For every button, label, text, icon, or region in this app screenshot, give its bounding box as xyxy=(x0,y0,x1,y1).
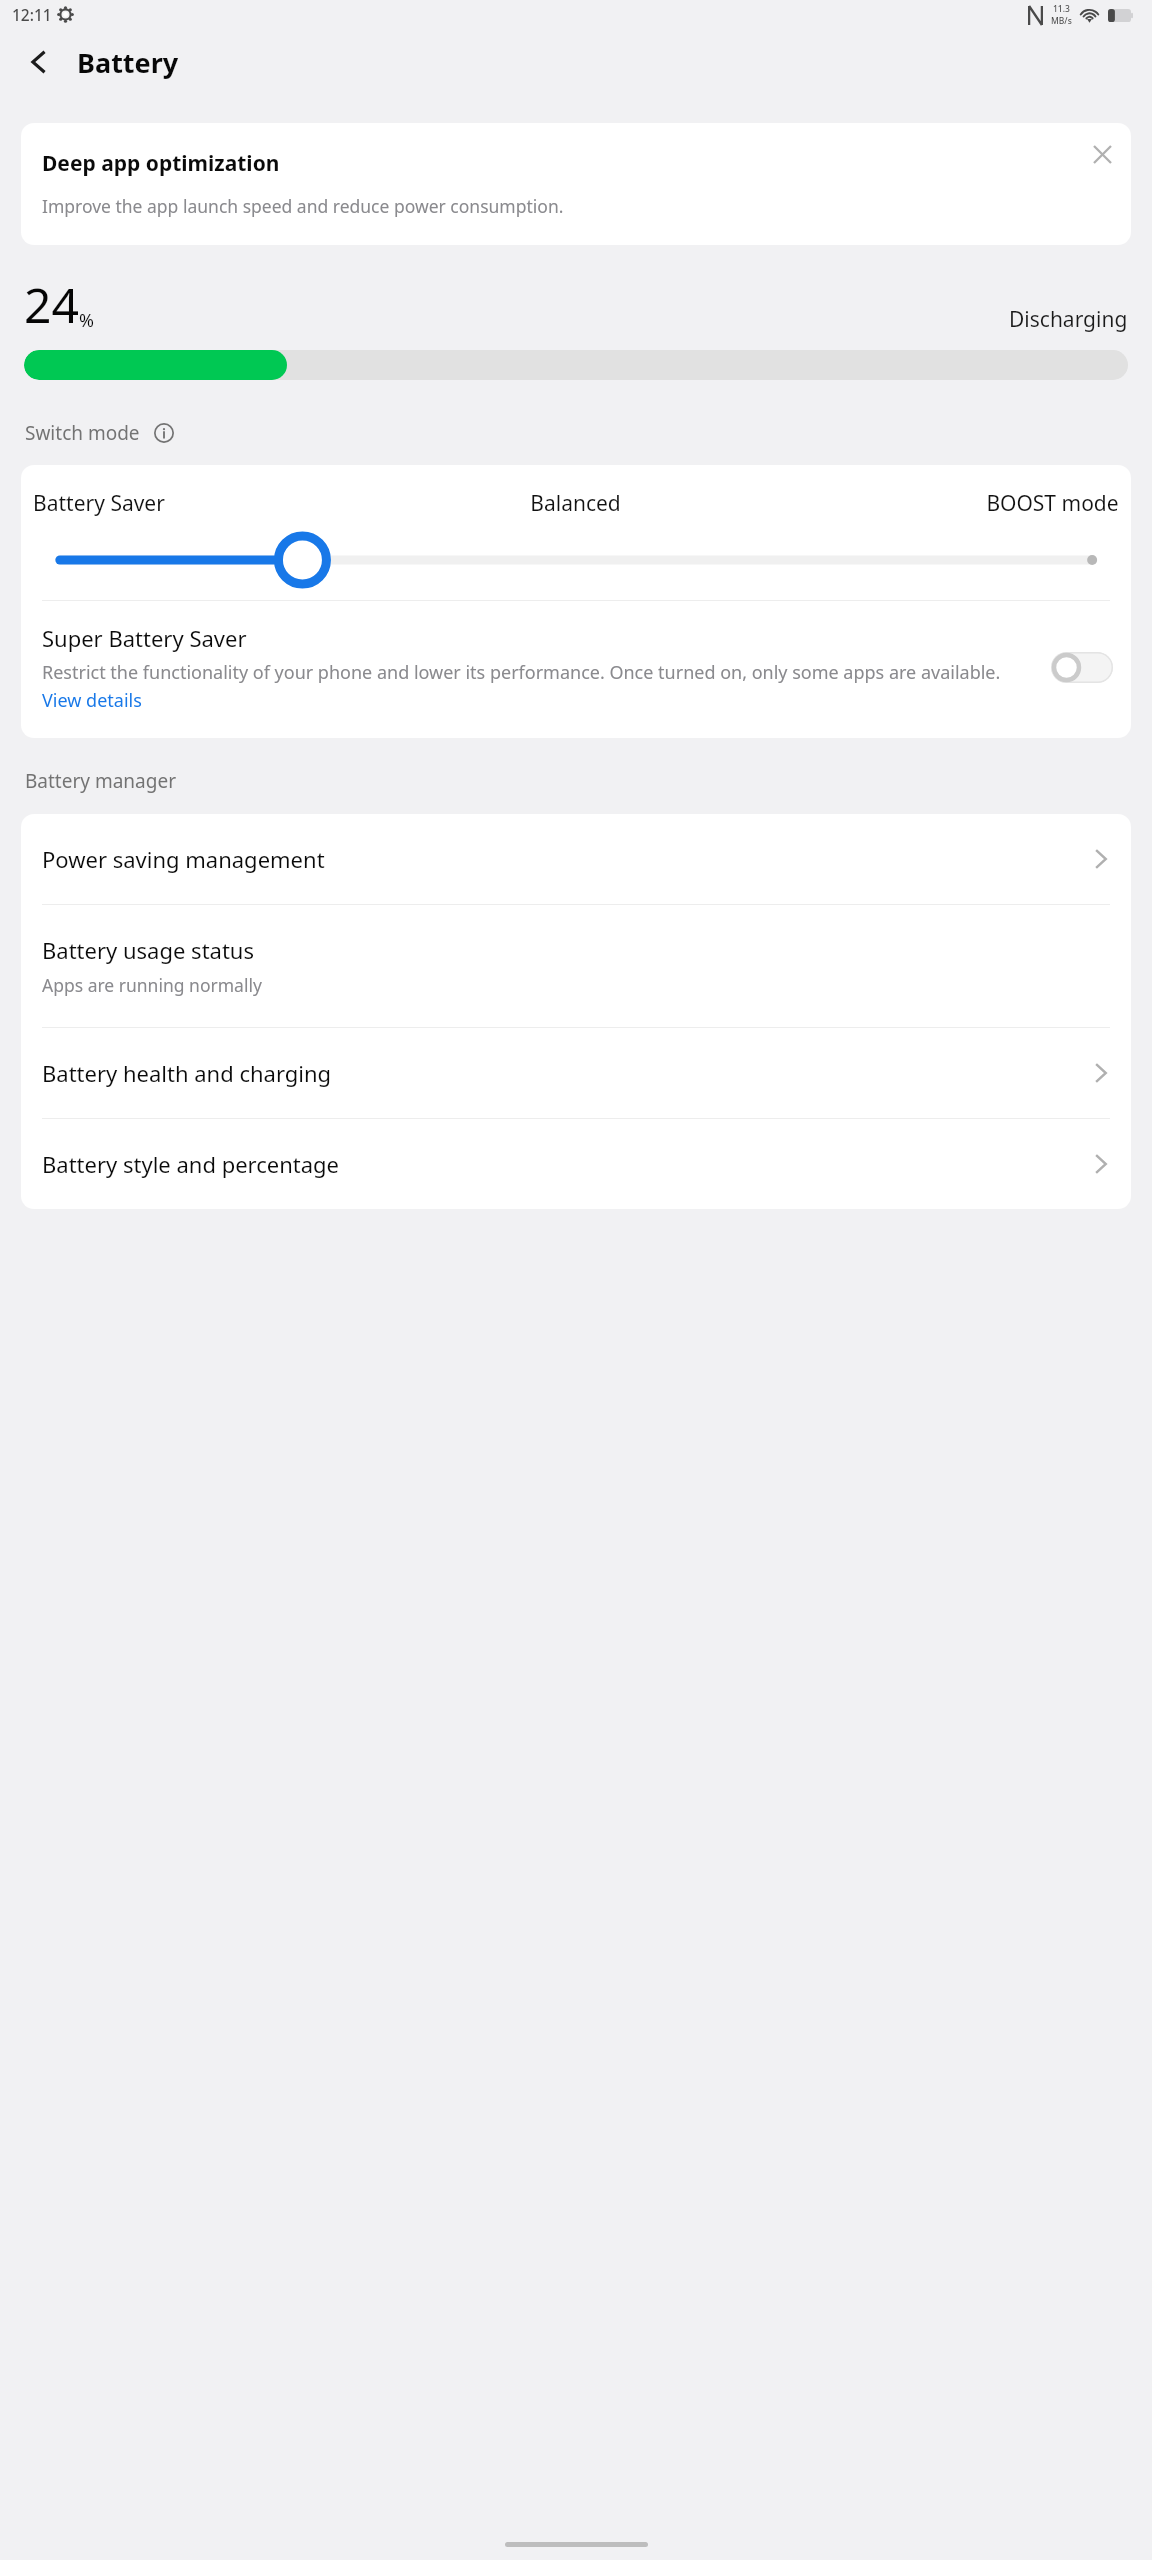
staticText: MB/s xyxy=(1051,15,1072,27)
staticText: 24 xyxy=(24,272,79,337)
staticText: Deep app optimization xyxy=(42,149,280,178)
button[interactable]: Battery usage status xyxy=(21,905,1131,1027)
staticText: Battery style and percentage xyxy=(42,1149,340,1179)
staticText: Switch mode xyxy=(25,420,140,446)
staticText: Balanced xyxy=(530,489,621,518)
staticText: Power saving management xyxy=(42,844,325,874)
button[interactable]: Super Battery Saver xyxy=(21,601,1131,738)
staticText: Discharging xyxy=(1009,305,1128,334)
button[interactable]: Super Battery Saver toggle xyxy=(1051,652,1113,683)
staticText: Restrict the functionality of your phone… xyxy=(42,660,1041,712)
button[interactable]: Back xyxy=(14,37,64,87)
staticText: % xyxy=(79,308,94,333)
staticText: 11.3 xyxy=(1053,3,1070,15)
staticText: Super Battery Saver xyxy=(42,623,247,653)
staticText: Battery health and charging xyxy=(42,1058,332,1088)
staticText: Battery manager xyxy=(25,768,176,794)
staticText: Apps are running normally xyxy=(42,973,262,997)
staticText: BOOST mode xyxy=(986,489,1119,518)
button[interactable]: Power saving management xyxy=(21,814,1131,904)
button[interactable]: Switch mode info xyxy=(149,418,179,448)
button[interactable]: Battery style and percentage xyxy=(21,1119,1131,1209)
staticText: Battery usage status xyxy=(42,935,254,965)
staticText: Battery xyxy=(77,44,179,81)
button[interactable]: Dismiss xyxy=(1081,133,1123,175)
button[interactable]: Deep app optimization xyxy=(21,123,1131,245)
staticText: Improve the app launch speed and reduce … xyxy=(42,194,982,218)
button[interactable]: Battery Saver xyxy=(21,465,1131,600)
staticText: 12:11 xyxy=(12,4,52,25)
staticText: Battery Saver xyxy=(33,489,165,518)
button[interactable]: Battery health and charging xyxy=(21,1028,1131,1118)
